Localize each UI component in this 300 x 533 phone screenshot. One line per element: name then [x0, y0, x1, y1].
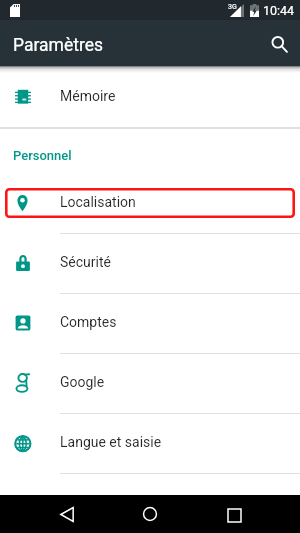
- staticText: Paramètres: [13, 35, 104, 56]
- button[interactable]: Search: [263, 28, 295, 60]
- button[interactable]: Back: [47, 495, 87, 533]
- staticText: Sécurité: [60, 254, 111, 270]
- staticText: Langue et saisie: [60, 434, 162, 450]
- staticText: Localisation: [60, 194, 136, 210]
- button[interactable]: Sécurité: [0, 233, 300, 293]
- staticText: 3G: [228, 3, 237, 11]
- button[interactable]: Home: [130, 495, 170, 533]
- button[interactable]: Google: [0, 353, 300, 413]
- staticText: 10:44: [263, 3, 295, 18]
- button[interactable]: Langue et saisie: [0, 413, 300, 473]
- button[interactable]: Mémoire: [0, 67, 300, 127]
- staticText: Comptes: [60, 314, 117, 330]
- staticText: Personnel: [13, 148, 72, 163]
- button[interactable]: Comptes: [0, 293, 300, 353]
- staticText: Google: [60, 374, 105, 390]
- button[interactable]: Recent apps: [214, 495, 254, 533]
- staticText: Mémoire: [60, 88, 116, 104]
- button[interactable]: Localisation: [0, 173, 300, 233]
